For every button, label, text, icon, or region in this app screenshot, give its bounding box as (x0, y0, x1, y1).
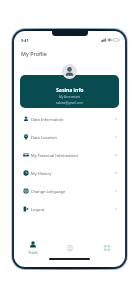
button[interactable]: My Financial Information (14, 146, 125, 164)
staticText: Profile (28, 251, 38, 255)
staticText: sabina@gmail.com (56, 101, 83, 105)
staticText: My Financial Information (31, 153, 78, 158)
button[interactable]: My History (14, 164, 125, 182)
staticText: Logout (31, 207, 45, 212)
button[interactable]: Data Information (14, 110, 125, 128)
staticText: Data Location (31, 135, 57, 140)
staticText: 9:41 (21, 38, 29, 43)
staticText: My Accountant (59, 95, 81, 99)
button[interactable]: Sasina info (20, 75, 119, 108)
staticText: Data Information (31, 117, 64, 122)
staticText: My History (31, 171, 52, 176)
button[interactable]: Document (51, 238, 88, 258)
button[interactable]: Change Language (14, 182, 125, 200)
button[interactable]: Profile (14, 238, 51, 258)
button[interactable]: Data Location (14, 128, 125, 146)
button[interactable]: Apps (88, 238, 125, 258)
staticText: Change Language (31, 189, 66, 194)
staticText: Sasina info (56, 86, 84, 93)
staticText: My Profile (21, 50, 47, 57)
button[interactable]: Logout (14, 200, 125, 218)
